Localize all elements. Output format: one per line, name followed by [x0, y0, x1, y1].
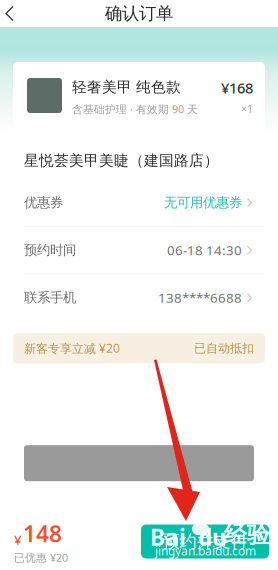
staticText: ¥ — [14, 531, 22, 548]
staticText: 已自动抵扣 — [194, 341, 254, 355]
staticText: 星悦荟美甲美睫（建国路店） — [24, 152, 219, 170]
staticText: 已优惠 ¥20 — [14, 550, 68, 565]
staticText: 无可用优惠券 — [164, 194, 242, 211]
staticText: 含基础护理 · 有效期 90 天 — [72, 102, 198, 116]
staticText: 预约并支付 — [162, 531, 247, 552]
staticText: 06-18 14:30 — [167, 241, 242, 259]
staticText: 148 — [23, 518, 62, 548]
button[interactable]: 联系手机 — [13, 274, 265, 321]
button[interactable]: 预约并支付 — [141, 524, 269, 558]
staticText: 预约时间 — [24, 242, 76, 258]
staticText: jingyan.baidu.com — [155, 543, 256, 559]
staticText: ×1 — [241, 101, 253, 116]
button[interactable]: 返回 — [0, 0, 36, 27]
staticText: 优惠券 — [24, 194, 63, 211]
staticText: 经验 — [224, 521, 270, 549]
button[interactable]: 优惠券 — [13, 179, 265, 226]
staticText: 联系手机 — [24, 289, 76, 306]
staticText: Bai — [150, 522, 186, 552]
staticText: 轻奢美甲 纯色款 — [72, 78, 181, 96]
staticText: 确认订单 — [105, 3, 173, 24]
staticText: 138****6688 — [158, 289, 242, 306]
button[interactable]: 预约时间 — [13, 227, 265, 274]
staticText: ¥168 — [221, 78, 253, 97]
staticText: du — [198, 522, 227, 552]
staticText: 新客专享立减 ¥20 — [24, 340, 120, 356]
